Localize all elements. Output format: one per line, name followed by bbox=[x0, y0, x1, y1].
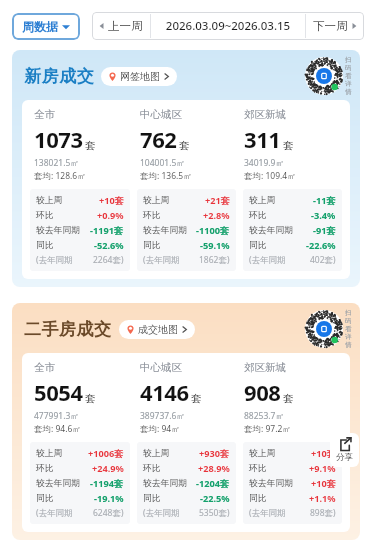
staticText: 环比 bbox=[36, 463, 54, 474]
button[interactable]: 扫码看详情 bbox=[305, 309, 352, 349]
staticText: 郊区新城 bbox=[244, 108, 286, 121]
staticText: 较上周 bbox=[249, 448, 276, 459]
staticText: -91套 bbox=[313, 224, 336, 237]
staticText: 环比 bbox=[249, 210, 267, 221]
staticText: 同比 bbox=[36, 493, 54, 504]
staticText: 311 bbox=[244, 124, 281, 154]
staticText: 同比 bbox=[143, 240, 161, 251]
staticText: 套 bbox=[283, 139, 294, 152]
staticText: 1073 bbox=[34, 124, 83, 154]
staticText: 389737.6㎡ bbox=[140, 410, 185, 422]
staticText: 1862套) bbox=[199, 254, 230, 266]
staticText: 较上周 bbox=[36, 448, 63, 459]
staticText: 402套) bbox=[310, 254, 336, 266]
staticText: 套均: 97.2㎡ bbox=[244, 423, 291, 435]
staticText: 扫 bbox=[345, 56, 352, 64]
staticText: -1100套 bbox=[196, 224, 230, 237]
staticText: +10套 bbox=[311, 477, 336, 490]
staticText: 分享 bbox=[336, 452, 353, 463]
staticText: 套 bbox=[191, 392, 202, 405]
staticText: 较上周 bbox=[143, 448, 170, 459]
button[interactable]: 分享 bbox=[330, 433, 359, 467]
staticText: +10套 bbox=[311, 447, 336, 460]
staticText: 较去年同期 bbox=[36, 478, 80, 489]
staticText: 码 bbox=[345, 64, 352, 72]
staticText: +0.9% bbox=[97, 209, 124, 222]
staticText: 同比 bbox=[36, 240, 54, 251]
staticText: 较去年同期 bbox=[249, 478, 293, 489]
staticText: 较上周 bbox=[36, 195, 63, 206]
staticText: 88253.7㎡ bbox=[244, 410, 284, 422]
staticText: 2026.03.09~2026.03.15 bbox=[151, 18, 305, 34]
staticText: (去年同期 bbox=[36, 254, 73, 266]
staticText: +9.1% bbox=[309, 462, 336, 475]
staticText: 2264套) bbox=[93, 254, 124, 266]
button[interactable]: 上一周 bbox=[92, 12, 150, 40]
staticText: 情 bbox=[345, 88, 352, 96]
staticText: 套均: 94㎡ bbox=[140, 423, 180, 435]
staticText: -1194套 bbox=[90, 477, 124, 490]
staticText: 看 bbox=[345, 325, 352, 333]
staticText: 套均: 136.5㎡ bbox=[140, 170, 192, 182]
staticText: 新房成交 bbox=[24, 66, 94, 87]
staticText: 4146 bbox=[140, 377, 189, 407]
staticText: 环比 bbox=[249, 463, 267, 474]
staticText: 环比 bbox=[143, 210, 161, 221]
staticText: +2.8% bbox=[203, 209, 230, 222]
staticText: 中心城区 bbox=[140, 108, 182, 121]
staticText: 套 bbox=[85, 392, 96, 405]
staticText: 扫 bbox=[345, 309, 352, 317]
staticText: +10套 bbox=[99, 194, 124, 207]
staticText: 下一周 bbox=[313, 19, 348, 33]
staticText: 看 bbox=[345, 72, 352, 80]
staticText: -3.4% bbox=[311, 209, 336, 222]
staticText: 周数据 bbox=[22, 19, 58, 34]
button[interactable]: 扫码看详情 bbox=[305, 56, 352, 96]
staticText: 全市 bbox=[34, 108, 55, 121]
staticText: (去年同期 bbox=[143, 254, 180, 266]
staticText: -59.1% bbox=[200, 239, 230, 252]
staticText: -1204套 bbox=[196, 477, 230, 490]
staticText: 较去年同期 bbox=[36, 225, 80, 236]
staticText: 5054 bbox=[34, 377, 83, 407]
staticText: 762 bbox=[140, 124, 177, 154]
button[interactable]: 成交地图 bbox=[119, 320, 195, 339]
staticText: -22.5% bbox=[200, 492, 230, 505]
staticText: 5350套) bbox=[199, 507, 230, 519]
staticText: 套 bbox=[85, 139, 96, 152]
staticText: 34019.9㎡ bbox=[244, 157, 284, 169]
button[interactable]: 下一周 bbox=[306, 12, 364, 40]
staticText: +1006套 bbox=[88, 447, 124, 460]
staticText: 较上周 bbox=[143, 195, 170, 206]
staticText: 网签地图 bbox=[120, 70, 160, 83]
staticText: 二手房成交 bbox=[24, 319, 112, 340]
staticText: 同比 bbox=[249, 240, 267, 251]
staticText: 郊区新城 bbox=[244, 361, 286, 374]
staticText: 较去年同期 bbox=[143, 225, 187, 236]
staticText: 较去年同期 bbox=[143, 478, 187, 489]
staticText: 情 bbox=[345, 341, 352, 349]
staticText: 码 bbox=[345, 317, 352, 325]
staticText: 详 bbox=[345, 80, 352, 88]
staticText: (去年同期 bbox=[249, 507, 286, 519]
staticText: 套均: 94.6㎡ bbox=[34, 423, 81, 435]
staticText: -22.6% bbox=[306, 239, 336, 252]
staticText: 908 bbox=[244, 377, 281, 407]
staticText: -11套 bbox=[313, 194, 336, 207]
staticText: -19.1% bbox=[94, 492, 124, 505]
staticText: 中心城区 bbox=[140, 361, 182, 374]
staticText: 104001.5㎡ bbox=[140, 157, 185, 169]
staticText: 套 bbox=[179, 139, 190, 152]
button[interactable]: 周数据 bbox=[12, 13, 80, 40]
staticText: (去年同期 bbox=[36, 507, 73, 519]
staticText: 138021.5㎡ bbox=[34, 157, 79, 169]
staticText: 环比 bbox=[143, 463, 161, 474]
staticText: +21套 bbox=[205, 194, 230, 207]
staticText: 同比 bbox=[249, 493, 267, 504]
staticText: 套均: 109.4㎡ bbox=[244, 170, 296, 182]
staticText: 同比 bbox=[143, 493, 161, 504]
staticText: 上一周 bbox=[108, 19, 143, 33]
button[interactable]: 网签地图 bbox=[101, 67, 177, 86]
staticText: +28.9% bbox=[198, 462, 230, 475]
staticText: 套均: 128.6㎡ bbox=[34, 170, 86, 182]
